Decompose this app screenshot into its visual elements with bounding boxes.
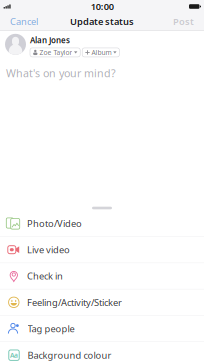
button[interactable]: Post xyxy=(173,15,194,28)
button[interactable]: Tag people xyxy=(0,316,204,342)
staticText: Photo/Video xyxy=(27,217,82,230)
staticText: Tag people xyxy=(27,322,74,335)
staticText: Feeling/Activity/Sticker xyxy=(27,296,122,308)
staticText: Update status xyxy=(70,15,134,28)
button[interactable]: Feeling/Activity/Sticker xyxy=(0,289,204,316)
button[interactable]: Album xyxy=(82,48,119,57)
staticText: Background colour xyxy=(27,349,111,361)
staticText: Live video xyxy=(27,243,70,256)
button[interactable]: Zoe Taylor xyxy=(30,48,80,57)
staticText: What's on your mind? xyxy=(6,66,116,80)
staticText: 10:00 xyxy=(91,0,114,13)
staticText: Alan Jones xyxy=(30,35,70,45)
button[interactable]: Cancel xyxy=(10,15,38,28)
button[interactable]: Aa xyxy=(0,342,204,362)
button[interactable]: Live video xyxy=(0,237,204,263)
staticText: Aa xyxy=(10,351,18,360)
staticText: Cancel xyxy=(10,15,38,28)
staticText: Post xyxy=(173,15,194,28)
staticText: Zoe Taylor xyxy=(39,48,72,57)
staticText: Album xyxy=(92,48,112,57)
staticText: Check in xyxy=(27,270,63,282)
button[interactable]: Check in xyxy=(0,263,204,289)
button[interactable]: Photo/Video xyxy=(0,210,204,237)
